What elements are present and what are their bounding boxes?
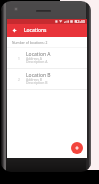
staticText: Description A [26, 59, 48, 64]
button[interactable]: 1 [7, 48, 87, 69]
staticText: 1 [14, 56, 24, 61]
button[interactable]: 2 [7, 69, 87, 90]
staticText: Address A [26, 56, 42, 61]
button[interactable]: Back [7, 24, 21, 37]
staticText: Location B [26, 72, 51, 79]
staticText: Description B [26, 80, 48, 85]
staticText: Address B [26, 77, 42, 82]
button[interactable]: Add location [71, 142, 83, 154]
staticText: Location A [26, 51, 51, 58]
staticText: 12:40 [75, 19, 85, 24]
staticText: 2 [14, 77, 24, 82]
staticText: Number of locations: 2 [12, 40, 48, 44]
staticText: Locations [24, 27, 47, 34]
